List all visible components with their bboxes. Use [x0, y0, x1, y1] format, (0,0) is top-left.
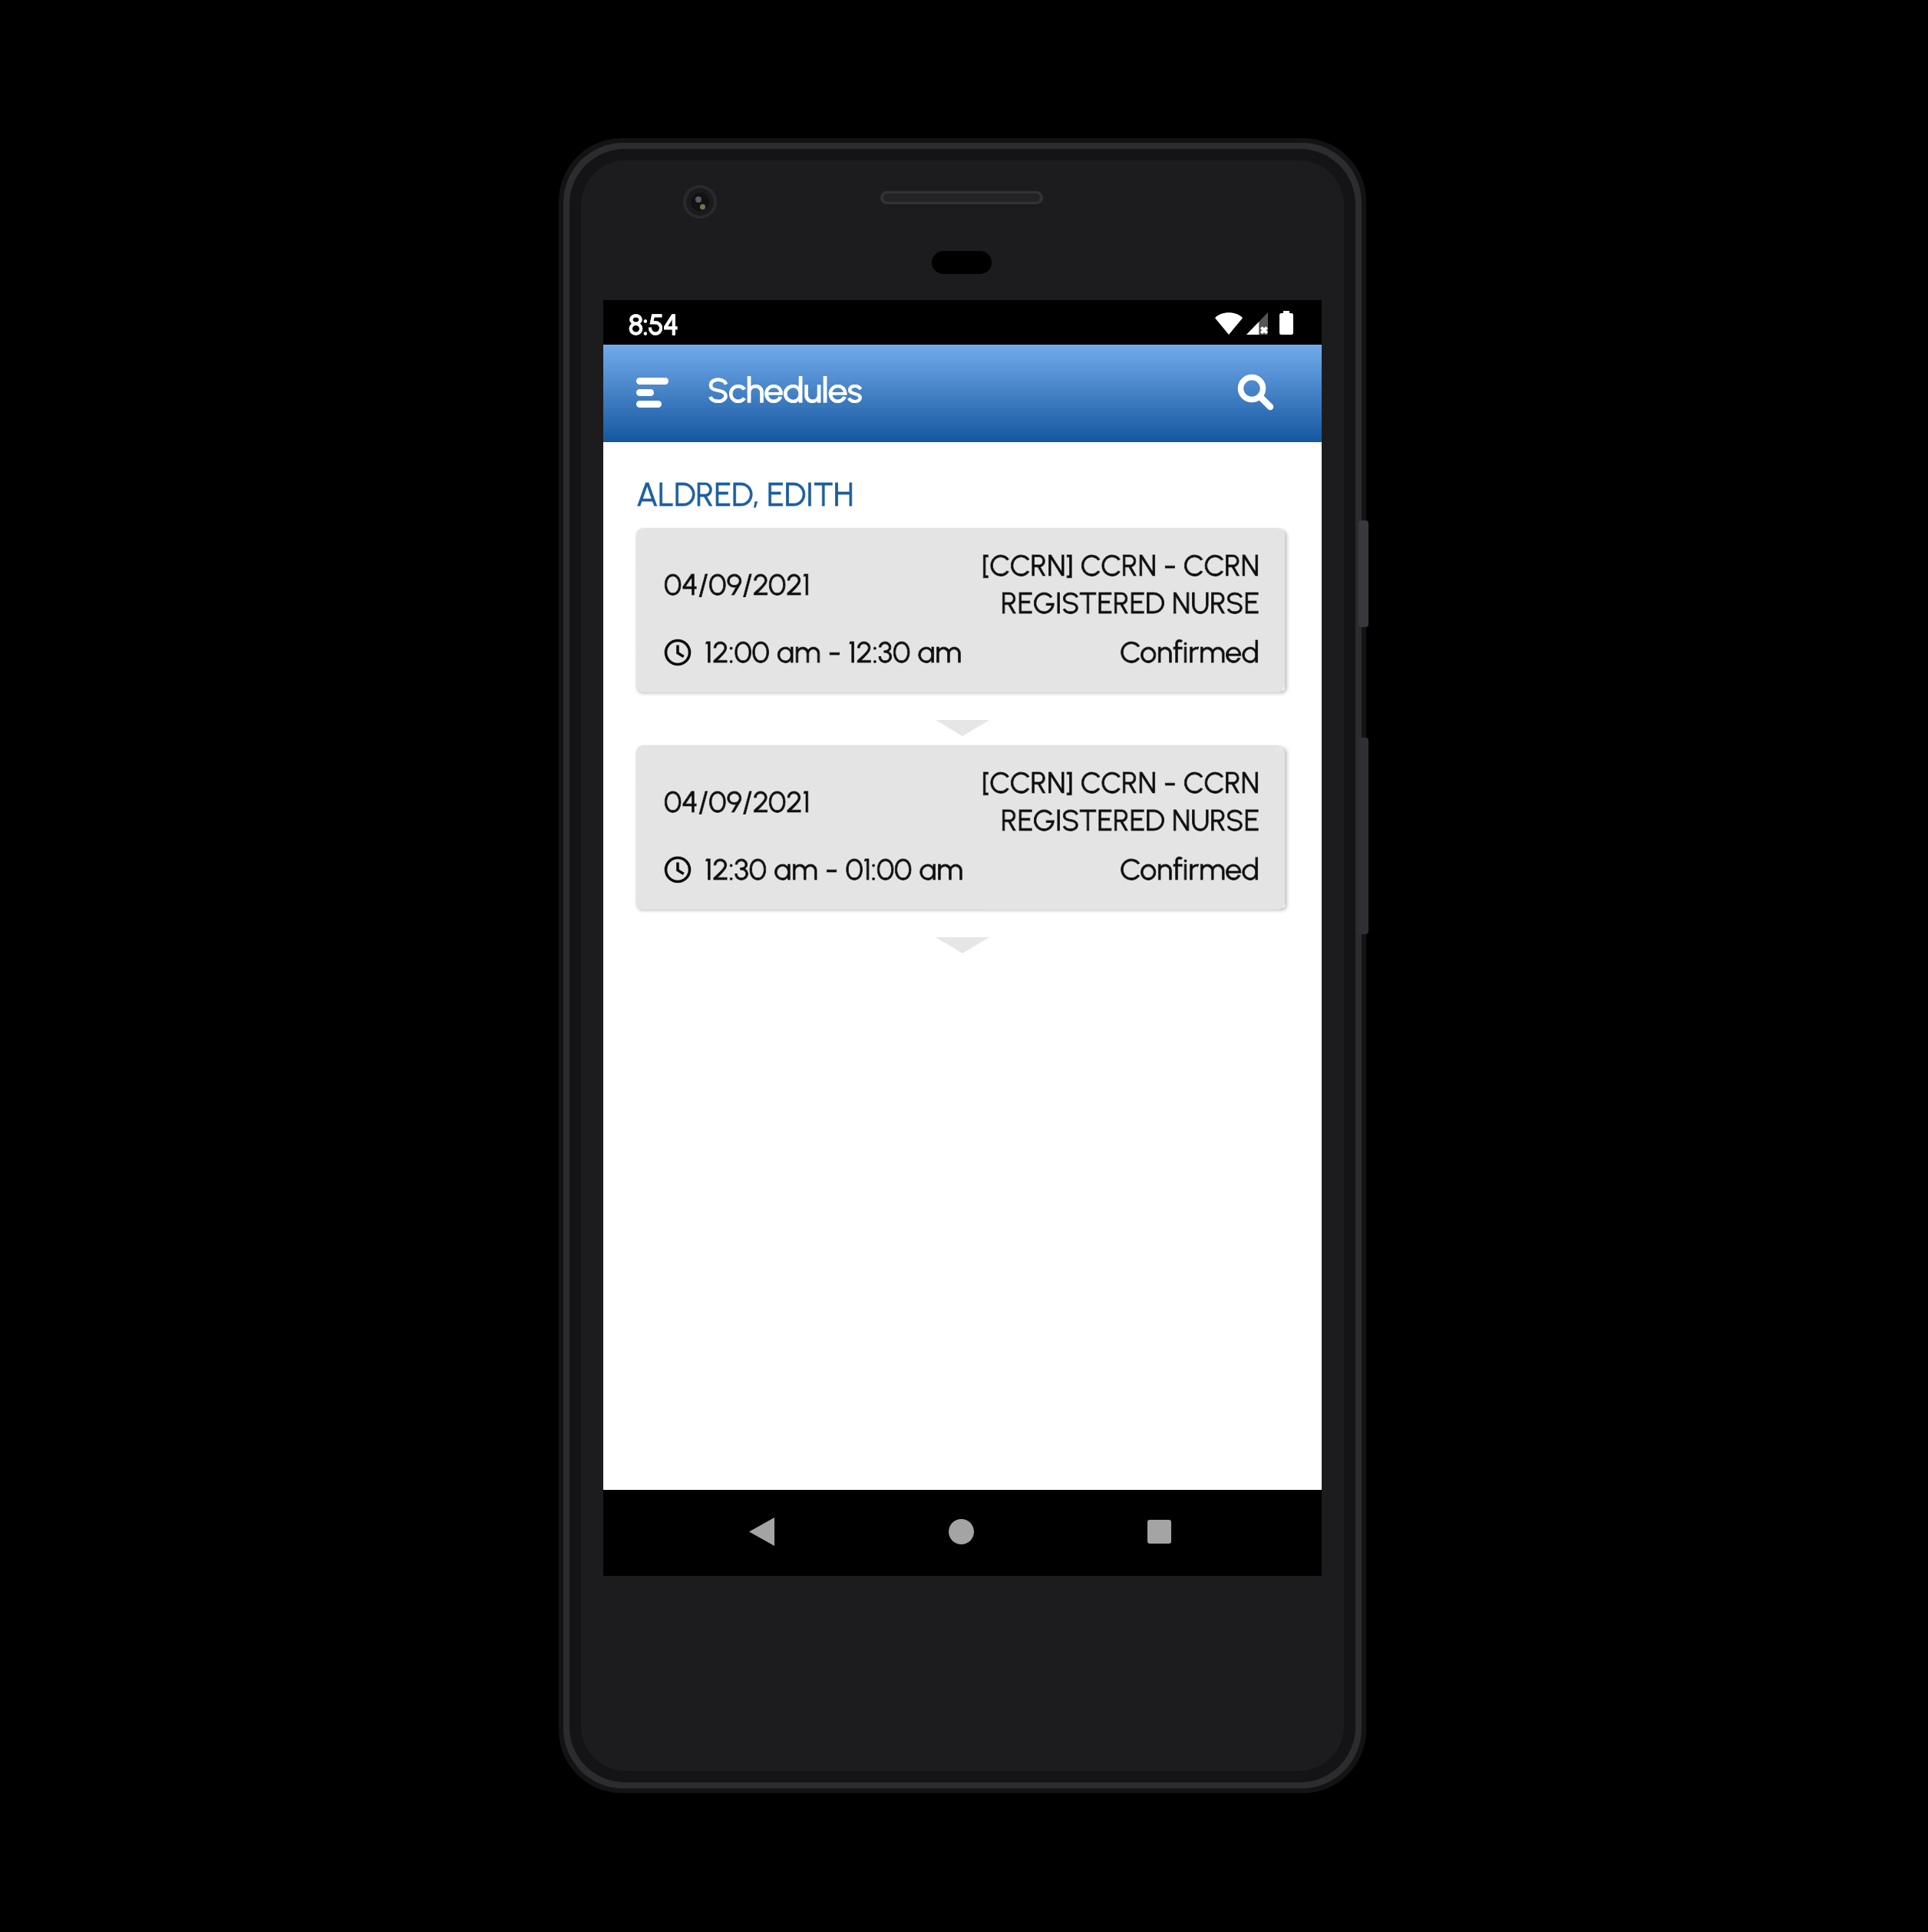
- staticText: Confirmed: [1118, 851, 1259, 887]
- button[interactable]: 04/09/2021: [636, 745, 1285, 910]
- staticText: Confirmed: [1118, 634, 1259, 670]
- staticText: Confirmed: [1118, 851, 1259, 887]
- button[interactable]: Home: [924, 1494, 998, 1568]
- staticText: [CCRN] CCRN - CCRN REGISTERED NURSE: [933, 548, 1259, 620]
- staticText: [CCRN] CCRN - CCRN REGISTERED NURSE: [933, 548, 1259, 620]
- staticText: 04/09/2021: [664, 566, 933, 603]
- button[interactable]: Open navigation menu: [625, 366, 680, 421]
- button[interactable]: Expand shift details: [920, 913, 1005, 960]
- staticText: 04/09/2021: [664, 566, 933, 603]
- staticText: 04/09/2021: [664, 784, 933, 820]
- button[interactable]: Recent apps: [1122, 1494, 1196, 1568]
- staticText: [CCRN] CCRN - CCRN REGISTERED NURSE: [933, 765, 1259, 837]
- staticText: [CCRN] CCRN - CCRN REGISTERED NURSE: [933, 765, 1259, 837]
- staticText: Schedules: [708, 369, 884, 411]
- staticText: 8:54: [629, 309, 705, 342]
- staticText: 8:54: [629, 309, 705, 342]
- staticText: 04/09/2021: [664, 784, 933, 820]
- button[interactable]: Search: [1238, 372, 1307, 441]
- button[interactable]: Expand shift details: [920, 695, 1005, 743]
- staticText: Schedules: [708, 369, 884, 411]
- button[interactable]: Back: [725, 1494, 798, 1568]
- staticText: ALDRED, EDITH: [636, 475, 1322, 514]
- button[interactable]: 04/09/2021: [636, 528, 1285, 692]
- staticText: Confirmed: [1118, 634, 1259, 670]
- staticText: 12:00 am - 12:30 am: [705, 634, 975, 670]
- staticText: 12:30 am - 01:00 am: [705, 851, 975, 887]
- staticText: 12:30 am - 01:00 am: [705, 851, 975, 887]
- staticText: ALDRED, EDITH: [636, 475, 1322, 514]
- staticText: 12:00 am - 12:30 am: [705, 634, 975, 670]
